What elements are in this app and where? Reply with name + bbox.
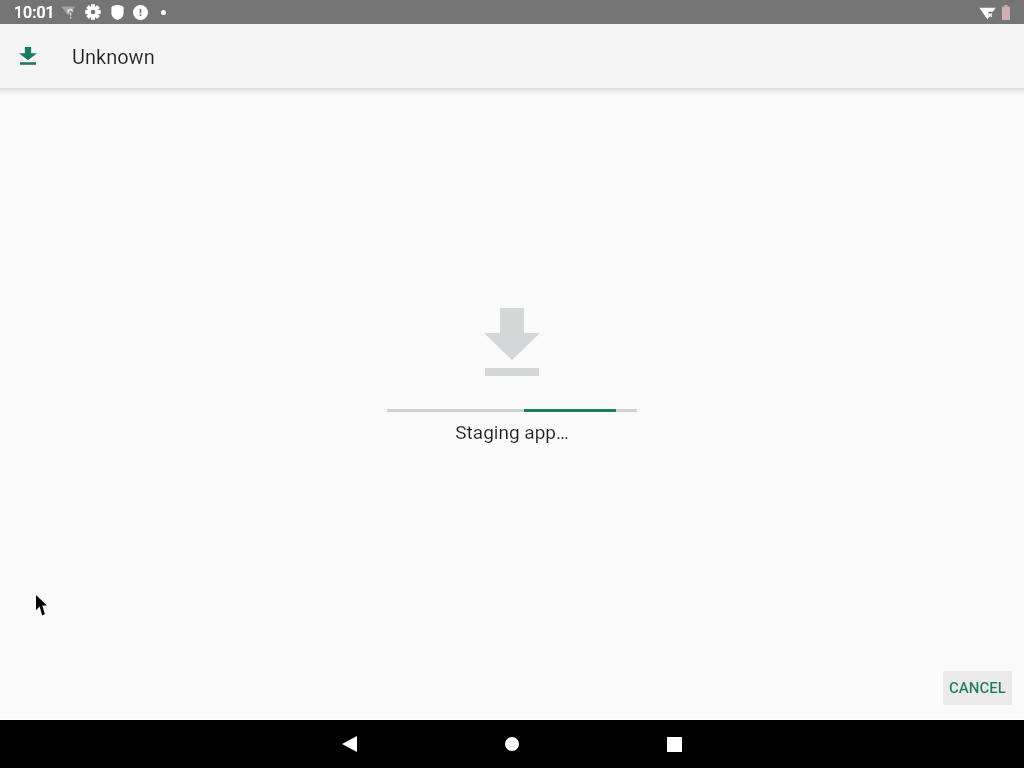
- button[interactable]: Install app: [12, 40, 44, 72]
- button[interactable]: Home: [488, 720, 536, 768]
- staticText: Staging app…: [455, 421, 569, 443]
- button[interactable]: CANCEL: [943, 671, 1012, 705]
- button[interactable]: Recent apps: [650, 720, 698, 768]
- staticText: Unknown: [72, 45, 155, 68]
- staticText: CANCEL: [949, 679, 1006, 697]
- staticText: 10:01: [14, 3, 55, 22]
- button[interactable]: Back: [325, 720, 373, 768]
